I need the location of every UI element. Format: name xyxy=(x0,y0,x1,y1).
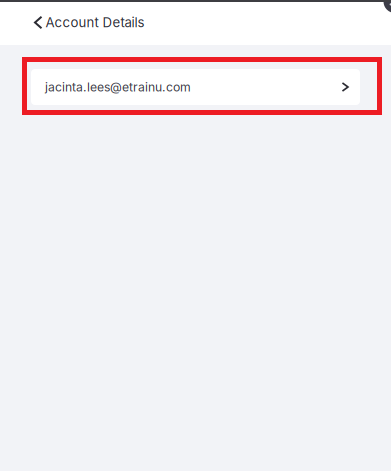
button[interactable]: Back to Account Details xyxy=(0,0,158,45)
button[interactable]: jacinta.lees@etrainu.com xyxy=(31,69,360,105)
staticText: jacinta.lees@etrainu.com xyxy=(45,80,191,94)
staticText: Account Details xyxy=(45,14,144,30)
